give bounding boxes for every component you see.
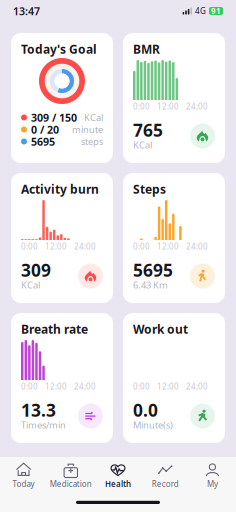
button[interactable]: Medication [47, 459, 94, 492]
staticText: 24:00 [74, 241, 96, 252]
button[interactable]: Today [0, 459, 47, 492]
button[interactable]: Record [142, 459, 189, 492]
staticText: 13.3 [21, 398, 56, 421]
staticText: KCal [84, 111, 103, 124]
staticText: 0:00 [21, 241, 38, 252]
staticText: 12:00 [157, 241, 179, 252]
staticText: 24:00 [74, 381, 96, 392]
staticText: 0:00 [133, 101, 150, 112]
staticText: Medication [50, 479, 92, 489]
button[interactable]: My [189, 459, 236, 492]
staticText: Health [105, 479, 131, 489]
staticText: 13:47 [13, 4, 40, 18]
button[interactable]: Health [94, 459, 142, 492]
staticText: Today [13, 479, 35, 489]
staticText: 309 [21, 258, 51, 281]
staticText: BMR [133, 41, 160, 57]
staticText: 12:00 [157, 101, 179, 112]
staticText: 309 / 150 [31, 110, 77, 125]
staticText: 12:00 [45, 381, 67, 392]
staticText: 0:00 [133, 381, 150, 392]
staticText: 5695 [133, 258, 173, 281]
staticText: Steps [133, 181, 166, 197]
staticText: 24:00 [186, 381, 208, 392]
staticText: Today's Goal [21, 41, 97, 57]
staticText: minute [72, 123, 103, 136]
staticText: 12:00 [45, 241, 67, 252]
staticText: 0:00 [133, 241, 150, 252]
staticText: Breath rate [21, 321, 88, 337]
staticText: 0.0 [133, 398, 158, 421]
staticText: 4G [195, 6, 206, 16]
staticText: Minute(s) [133, 419, 173, 431]
staticText: 91 [211, 6, 221, 16]
staticText: 0:00 [21, 381, 38, 392]
staticText: 12:00 [157, 381, 179, 392]
staticText: KCal [21, 279, 40, 291]
staticText: 5695 [31, 134, 55, 149]
staticText: 0 / 20 [31, 122, 59, 137]
staticText: My [207, 479, 218, 489]
staticText: 6.43 Km [133, 279, 168, 291]
staticText: Record [152, 479, 179, 489]
staticText: 24:00 [186, 241, 208, 252]
staticText: steps [81, 135, 103, 148]
staticText: KCal [133, 139, 152, 151]
staticText: 24:00 [186, 101, 208, 112]
staticText: Times/min [21, 419, 66, 431]
staticText: Activity burn [21, 181, 99, 197]
staticText: 765 [133, 118, 163, 141]
staticText: Work out [133, 321, 188, 337]
